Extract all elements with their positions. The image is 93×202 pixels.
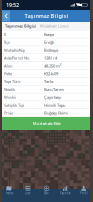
staticText: Kuru Tarım bbox=[44, 87, 64, 92]
staticText: İlçe bbox=[4, 40, 10, 45]
staticText: Proje bbox=[4, 110, 13, 116]
staticText: Mevkii bbox=[4, 95, 16, 100]
staticText: Nitelik bbox=[4, 87, 15, 92]
staticText: Taşınmaz Bilgisi bbox=[24, 12, 68, 20]
staticText: Tarla bbox=[44, 79, 53, 84]
staticText: 48.250 m² bbox=[44, 63, 61, 68]
staticText: Müdahale Ekle bbox=[32, 121, 60, 126]
staticText: Sahiplik Tipi bbox=[4, 102, 24, 108]
staticText: Mahalle/Köy bbox=[4, 47, 25, 53]
staticText: Ereğli bbox=[44, 40, 54, 45]
button[interactable]: Müdahale Ekle bbox=[0, 117, 93, 130]
staticText: Müdahale Listesi bbox=[40, 23, 69, 29]
staticText: İl bbox=[4, 32, 6, 37]
staticText: Ada/Parsel No bbox=[4, 55, 29, 61]
staticText: Konya bbox=[44, 32, 54, 37]
staticText: Ekle bbox=[44, 191, 49, 195]
button[interactable]: Müdahale Listesi bbox=[38, 22, 71, 30]
staticText: 1281 / 4 bbox=[44, 55, 57, 61]
staticText: Hisseli Tapu bbox=[44, 102, 65, 108]
staticText: Pafta bbox=[4, 71, 12, 76]
button[interactable]: Liste bbox=[19, 185, 37, 195]
button[interactable]: Profil bbox=[74, 185, 93, 195]
staticText: Alan bbox=[4, 63, 12, 68]
staticText: Taşınmaz Bilgisi bbox=[5, 23, 36, 29]
button[interactable]: Harita bbox=[0, 185, 19, 195]
button[interactable]: Raporlar bbox=[56, 185, 74, 195]
staticText: Çayırbaşı bbox=[44, 95, 61, 100]
staticText: Liste bbox=[25, 191, 31, 195]
staticText: Harita bbox=[6, 191, 13, 195]
button[interactable]: Taşınmaz Bilgisi bbox=[3, 22, 38, 30]
staticText: Yapı Türü bbox=[4, 79, 20, 84]
staticText: 19:52 bbox=[6, 1, 19, 9]
staticText: K32-b-09 bbox=[44, 71, 58, 76]
staticText: Buğday Ekimi bbox=[44, 110, 68, 116]
button[interactable]: Back bbox=[2, 10, 10, 21]
staticText: Raporlar bbox=[60, 191, 71, 195]
button[interactable]: Ekle bbox=[37, 185, 56, 195]
staticText: Profil bbox=[80, 191, 88, 195]
staticText: Belkaya bbox=[44, 47, 58, 53]
